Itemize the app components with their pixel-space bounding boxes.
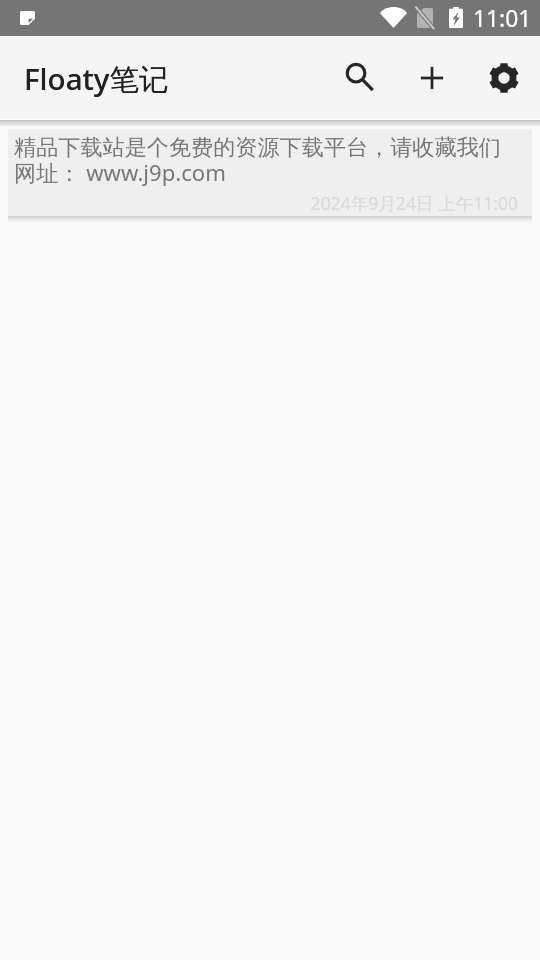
staticText: Floaty笔记 [24,58,169,98]
button[interactable]: Search [324,42,396,114]
staticText: 2024年9月24日 上午11:00 [14,191,518,215]
button[interactable]: 精品下载站是个免费的资源下载平台，请收藏我们网址： www.j9p.com [8,129,532,216]
staticText: 11:01 [473,3,532,34]
staticText: 精品下载站是个免费的资源下载平台，请收藏我们网址： www.j9p.com [14,134,507,188]
staticText: Floaty笔记 [24,58,169,98]
button[interactable]: Settings [468,42,540,114]
button[interactable]: New note [396,42,468,114]
